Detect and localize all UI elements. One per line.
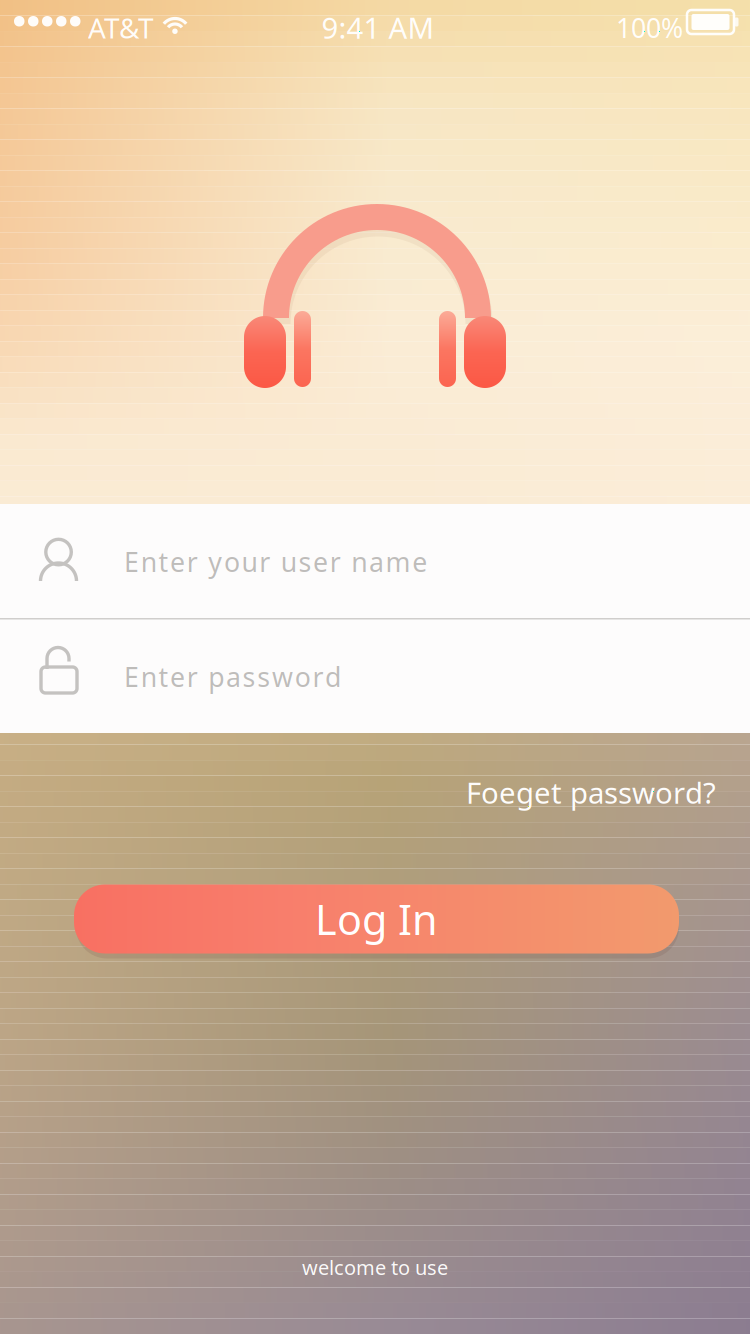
staticText: welcome to use bbox=[302, 1254, 448, 1281]
staticText: E bbox=[124, 544, 139, 579]
button[interactable]: E bbox=[0, 619, 750, 733]
staticText: e bbox=[313, 544, 328, 579]
staticText: n bbox=[141, 544, 157, 579]
staticText: r bbox=[187, 544, 198, 579]
staticText: t bbox=[158, 544, 168, 579]
staticText: s bbox=[257, 659, 270, 694]
staticText: o bbox=[295, 659, 311, 694]
staticText: a bbox=[226, 659, 241, 694]
staticText: r bbox=[187, 659, 198, 694]
staticText: u bbox=[242, 544, 258, 579]
staticText: u bbox=[281, 544, 297, 579]
staticText: r bbox=[330, 544, 341, 579]
staticText: e bbox=[170, 659, 185, 694]
staticText: e bbox=[170, 544, 185, 579]
staticText: y bbox=[208, 544, 222, 579]
staticText: e bbox=[412, 544, 427, 579]
staticText: Foeget password? bbox=[466, 773, 716, 812]
staticText: AT&T bbox=[88, 9, 154, 46]
button[interactable]: E bbox=[0, 504, 750, 618]
staticText: E bbox=[124, 659, 139, 694]
staticText: r bbox=[312, 659, 323, 694]
staticText: n bbox=[351, 544, 367, 579]
staticText: Log In bbox=[315, 892, 438, 946]
staticText: o bbox=[224, 544, 240, 579]
staticText: w bbox=[272, 659, 293, 694]
staticText: 9:41 AM bbox=[321, 8, 434, 47]
button[interactable]: Log In bbox=[74, 879, 679, 959]
staticText: m bbox=[386, 544, 411, 579]
staticText: d bbox=[325, 659, 341, 694]
staticText: t bbox=[158, 659, 168, 694]
button[interactable]: Foeget password? bbox=[458, 761, 708, 811]
staticText: s bbox=[298, 544, 311, 579]
staticText: a bbox=[369, 544, 384, 579]
staticText: 100% bbox=[616, 10, 683, 45]
staticText: s bbox=[243, 659, 256, 694]
staticText: r bbox=[259, 544, 270, 579]
staticText: p bbox=[208, 659, 224, 694]
staticText: n bbox=[141, 659, 157, 694]
